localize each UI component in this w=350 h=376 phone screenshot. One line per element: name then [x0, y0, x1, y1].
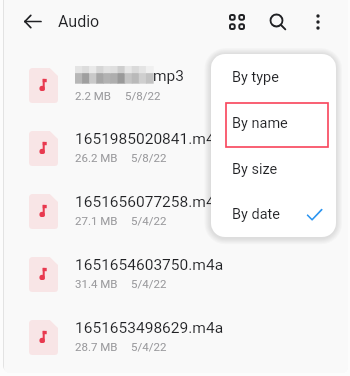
- button[interactable]: 1651653498629.m4a: [4, 306, 348, 369]
- staticText: 5/4/22: [131, 214, 167, 227]
- staticText: By size: [232, 161, 278, 178]
- staticText: 5/4/22: [131, 277, 167, 290]
- staticText: By date: [232, 206, 280, 223]
- staticText: 2.2 MB: [75, 89, 112, 102]
- staticText: 26.2 MB: [75, 151, 118, 164]
- button[interactable]: Search: [262, 6, 292, 36]
- staticText: 1651654603750.m4a: [75, 256, 224, 274]
- staticText: 1651656077258.m4a: [75, 193, 224, 211]
- staticText: By name: [232, 115, 288, 132]
- button[interactable]: 1651656077258.m4a: [4, 180, 348, 243]
- staticText: 31.4 MB: [75, 277, 118, 290]
- button[interactable]: By size: [211, 146, 336, 192]
- staticText: 28.7 MB: [75, 340, 118, 353]
- button[interactable]: Grid view: [223, 8, 251, 36]
- button[interactable]: Back: [18, 7, 47, 36]
- button[interactable]: 1651654603750.m4a: [4, 243, 348, 306]
- button[interactable]: More options: [304, 8, 332, 36]
- staticText: mp3: [153, 67, 185, 85]
- staticText: 27.1 MB: [75, 214, 118, 227]
- button[interactable]: mp3: [4, 54, 348, 117]
- staticText: By type: [232, 69, 279, 86]
- staticText: 5/4/22: [131, 340, 167, 353]
- button[interactable]: By date: [211, 192, 336, 237]
- staticText: 5/8/22: [125, 89, 161, 102]
- staticText: 1651985020841.m4a: [75, 130, 224, 148]
- button[interactable]: 1651985020841.m4a: [4, 117, 348, 180]
- staticText: 5/8/22: [131, 151, 167, 164]
- staticText: 1651653498629.m4a: [75, 319, 224, 337]
- button[interactable]: By name: [211, 100, 336, 146]
- button[interactable]: By type: [211, 54, 336, 100]
- staticText: Audio: [58, 12, 100, 31]
